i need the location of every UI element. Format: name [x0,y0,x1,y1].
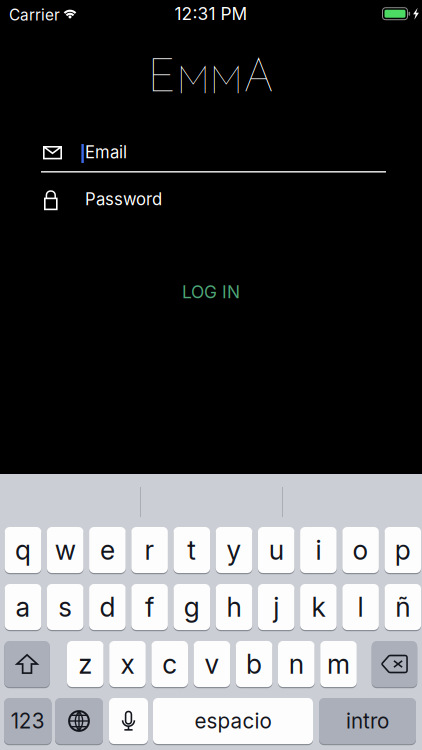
button[interactable]: o [342,527,379,574]
button[interactable]: k [300,584,337,631]
staticText: ñ [395,591,410,623]
button[interactable]: w [47,527,83,574]
button[interactable]: v [194,641,230,688]
staticText: k [311,591,325,623]
staticText: E [147,57,176,103]
button[interactable]: n [278,641,315,688]
button[interactable]: l [342,584,379,631]
staticText: n [289,648,304,680]
button[interactable]: y [216,527,252,574]
staticText: e [100,534,115,566]
staticText: p [395,534,411,566]
button[interactable]: b [236,641,272,688]
staticText: 12:31 PM [174,3,247,24]
staticText: d [99,591,115,623]
button[interactable]: LOG IN [136,272,286,312]
staticText: h [226,591,241,623]
button[interactable]: Next keyboard [55,698,103,745]
staticText: y [226,534,241,566]
button[interactable]: s [47,584,83,631]
staticText: t [187,534,196,566]
staticText: w [55,534,76,566]
button[interactable]: j [258,584,294,631]
staticText: l [358,591,364,623]
staticText: Password [85,189,162,209]
staticText: o [353,534,369,566]
staticText: LOG IN [182,281,240,302]
staticText: z [78,648,92,680]
button[interactable]: z [67,641,104,688]
button[interactable]: e [89,527,126,574]
staticText: a [15,591,30,623]
button[interactable]: Dictate [109,698,148,745]
staticText: r [145,534,155,566]
staticText: s [58,591,72,623]
staticText: x [120,648,134,680]
staticText: b [246,648,262,680]
button[interactable]: ñ [384,584,421,631]
button[interactable]: m [320,641,357,688]
staticText: espacio [194,708,271,733]
button[interactable]: p [384,527,421,574]
button[interactable]: intro [319,698,416,745]
button[interactable]: 123 [4,698,51,745]
staticText: q [15,534,31,566]
staticText: Email [85,142,127,162]
button[interactable]: c [151,641,188,688]
button[interactable]: h [216,584,252,631]
staticText: 123 [11,708,45,733]
button[interactable]: espacio [153,698,313,745]
staticText: g [184,591,200,623]
button[interactable]: t [173,527,210,574]
staticText: v [204,648,219,680]
staticText: Carrier [9,6,60,24]
staticText: f [145,591,154,623]
staticText: A [242,57,274,103]
staticText: j [273,591,279,623]
staticText: m [327,648,350,680]
button[interactable]: Shift [4,641,50,688]
button[interactable]: u [258,527,294,574]
button[interactable]: Delete [372,641,417,688]
staticText: MM [176,65,242,103]
button[interactable]: x [109,641,146,688]
staticText: i [315,534,321,566]
button[interactable]: d [89,584,126,631]
button[interactable]: a [5,584,41,631]
button[interactable]: f [131,584,168,631]
button[interactable]: r [131,527,168,574]
button[interactable]: i [300,527,337,574]
button[interactable]: g [173,584,210,631]
button[interactable]: q [5,527,41,574]
staticText: intro [346,708,389,733]
staticText: u [269,534,284,566]
staticText: c [162,648,177,680]
